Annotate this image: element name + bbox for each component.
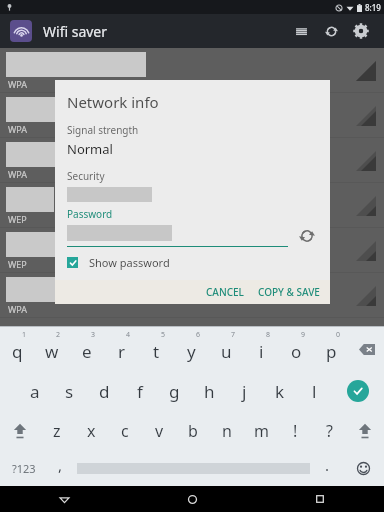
staticText: p — [326, 340, 337, 363]
staticText: m — [254, 420, 269, 442]
staticText: h — [204, 380, 215, 403]
button[interactable]: 4 — [104, 327, 139, 371]
staticText: ?123 — [12, 461, 36, 476]
button[interactable]: ?123 — [0, 451, 47, 486]
staticText: Password — [67, 207, 113, 221]
button[interactable]: c — [108, 411, 142, 451]
button[interactable]: Space — [74, 451, 312, 486]
staticText: ? — [326, 420, 333, 442]
button[interactable]: COPY & SAVE — [252, 280, 330, 304]
button[interactable]: Enter — [332, 371, 384, 411]
button[interactable]: s — [52, 371, 87, 411]
button[interactable]: 0 — [314, 327, 349, 371]
button[interactable]: Menu — [288, 18, 314, 44]
button[interactable]: d — [87, 371, 122, 411]
staticText: u — [221, 340, 232, 363]
button[interactable]: z — [39, 411, 74, 451]
button[interactable]: 9 — [279, 327, 314, 371]
button[interactable]: Generate password — [296, 225, 318, 247]
button[interactable]: 5 — [139, 327, 174, 371]
staticText: Signal strength — [67, 123, 139, 137]
button[interactable]: Shift — [0, 411, 39, 451]
staticText: a — [30, 380, 40, 403]
button[interactable]: Home — [128, 486, 256, 512]
staticText: ! — [293, 420, 298, 442]
staticText: WPA — [8, 168, 28, 180]
staticText: c — [121, 420, 129, 442]
button[interactable]: h — [192, 371, 227, 411]
staticText: l — [312, 380, 317, 403]
staticText: 6 — [196, 330, 201, 340]
staticText: Network info — [67, 92, 159, 112]
staticText: y — [187, 340, 196, 363]
staticText: q — [12, 340, 23, 363]
staticText: 4 — [126, 330, 131, 340]
staticText: Security — [67, 169, 105, 183]
staticText: Wifi saver — [43, 22, 108, 41]
button[interactable]: a — [17, 371, 52, 411]
staticText: j — [242, 380, 247, 403]
button[interactable]: Backspace — [349, 327, 384, 371]
staticText: CANCEL — [206, 285, 244, 299]
button[interactable]: 7 — [209, 327, 244, 371]
button[interactable]: 3 — [69, 327, 104, 371]
button[interactable]: m — [244, 411, 278, 451]
staticText: WPA — [8, 78, 28, 90]
button[interactable]: x — [74, 411, 108, 451]
button[interactable]: WEP — [0, 183, 384, 228]
button[interactable]: g — [157, 371, 192, 411]
button[interactable]: 8 — [244, 327, 279, 371]
staticText: x — [87, 420, 96, 442]
button[interactable]: 2 — [34, 327, 69, 371]
staticText: , — [58, 455, 63, 475]
button[interactable]: f — [122, 371, 157, 411]
staticText: 0 — [336, 330, 341, 340]
staticText: n — [222, 420, 232, 442]
button[interactable]: Wifi saver app icon — [10, 20, 32, 42]
staticText: k — [275, 380, 285, 403]
button[interactable]: k — [262, 371, 297, 411]
staticText: i — [259, 340, 264, 363]
staticText: WPA — [8, 123, 28, 135]
button[interactable]: ! — [278, 411, 312, 451]
staticText: WEP — [8, 258, 27, 270]
button[interactable]: WEP — [0, 228, 384, 273]
button[interactable]: , — [47, 451, 74, 486]
button[interactable]: v — [142, 411, 176, 451]
button[interactable]: WPA — [0, 138, 384, 183]
button[interactable]: WPA — [0, 48, 384, 93]
button[interactable]: b — [176, 411, 210, 451]
button[interactable]: Recents — [256, 486, 384, 512]
button[interactable]: Settings — [348, 18, 374, 44]
button[interactable]: WPA — [0, 93, 384, 138]
button[interactable]: CANCEL — [198, 280, 252, 304]
staticText: 2 — [56, 330, 61, 340]
staticText: o — [291, 340, 302, 363]
staticText: . — [325, 455, 330, 475]
staticText: 9 — [301, 330, 306, 340]
button[interactable]: . — [312, 451, 343, 486]
staticText: f — [137, 380, 143, 403]
staticText: s — [65, 380, 74, 403]
button[interactable]: j — [227, 371, 262, 411]
button[interactable]: l — [297, 371, 332, 411]
button[interactable]: 6 — [174, 327, 209, 371]
button[interactable]: Show password — [67, 255, 170, 270]
button[interactable]: n — [210, 411, 244, 451]
staticText: WEP — [8, 213, 27, 225]
staticText: 8:19 — [365, 2, 381, 13]
button[interactable]: Refresh — [318, 18, 344, 44]
staticText: Normal — [67, 140, 113, 158]
button[interactable]: Back — [0, 486, 128, 512]
button[interactable]: Emoji — [343, 451, 384, 486]
staticText: v — [155, 420, 164, 442]
staticText: 1 — [22, 330, 27, 340]
staticText: WPA — [8, 303, 28, 315]
staticText: t — [153, 340, 160, 363]
button[interactable]: ? — [312, 411, 346, 451]
button[interactable]: Shift — [346, 411, 384, 451]
button[interactable]: WPA — [0, 273, 384, 318]
button[interactable]: 1 — [0, 327, 34, 371]
staticText: w — [45, 340, 59, 363]
staticText: e — [82, 340, 92, 363]
